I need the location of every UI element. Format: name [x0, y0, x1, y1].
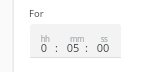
staticText: For [29, 7, 44, 20]
staticText: : [85, 40, 88, 55]
staticText: mm [62, 33, 92, 44]
staticText: 05 [58, 40, 88, 55]
staticText: 00 [88, 40, 118, 55]
staticText: : [55, 40, 58, 55]
button[interactable]: mm [58, 24, 88, 58]
staticText: ss [89, 33, 119, 44]
staticText: 0 [29, 40, 59, 55]
staticText: hh [30, 33, 60, 44]
button[interactable]: hh [29, 24, 59, 58]
button[interactable]: ss [88, 24, 118, 58]
